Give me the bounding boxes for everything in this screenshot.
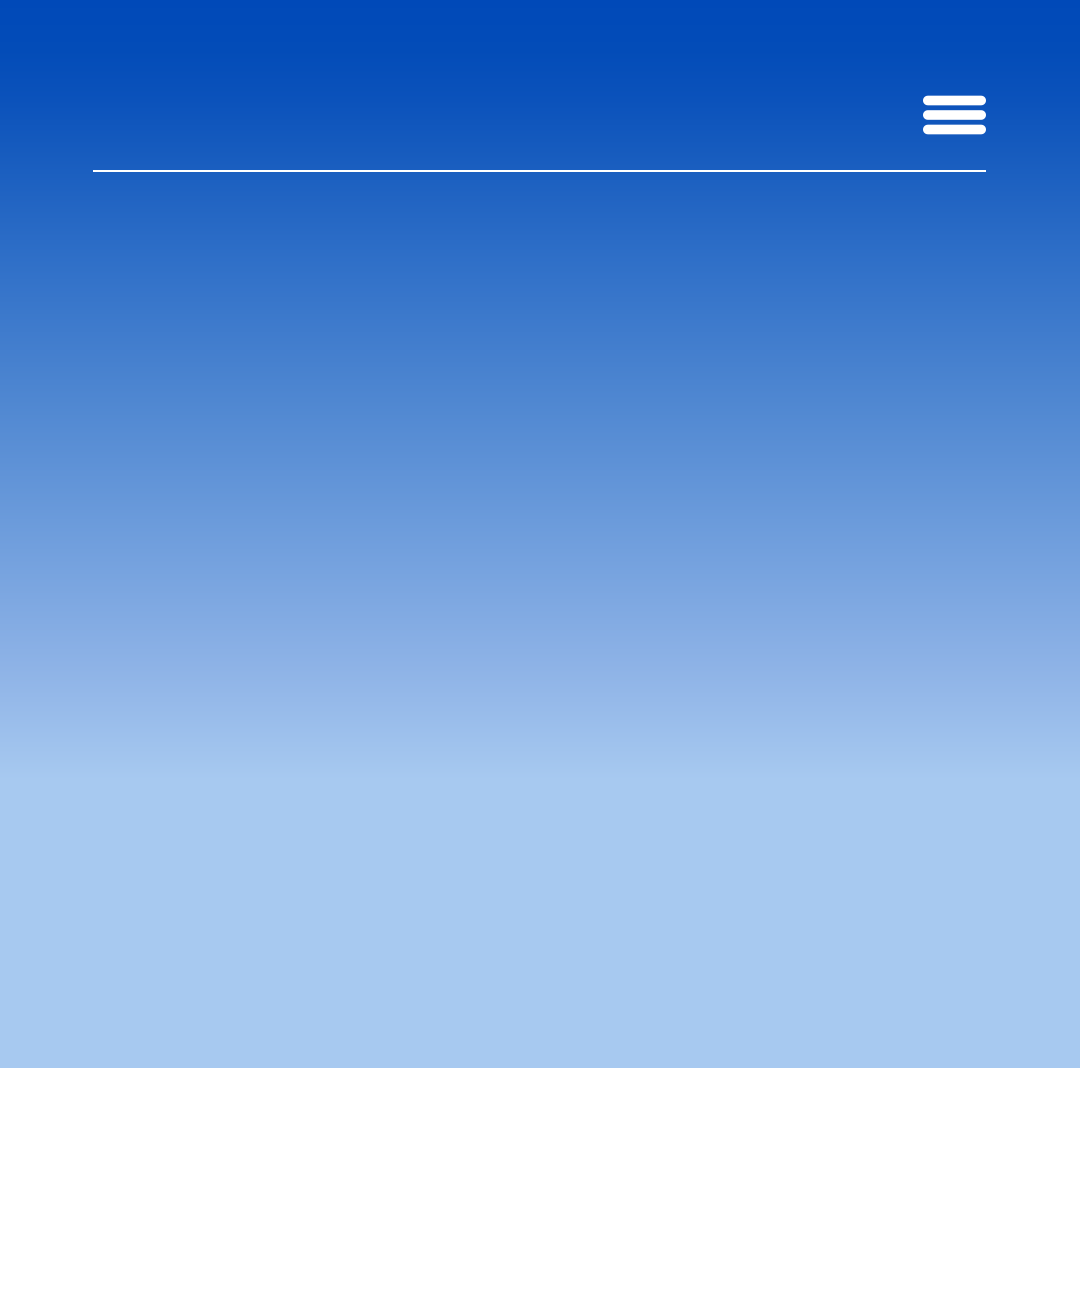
button[interactable]: Menu: [913, 84, 996, 146]
